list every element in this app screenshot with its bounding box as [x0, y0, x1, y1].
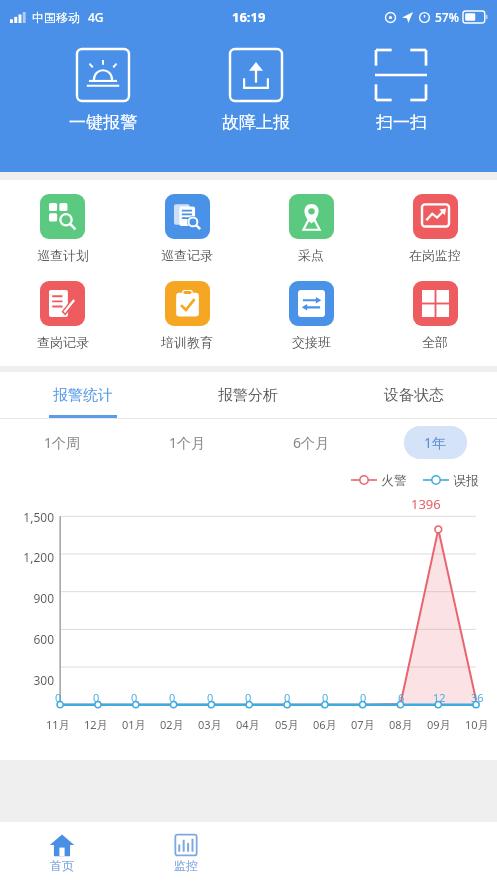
button[interactable]: 巡查计划	[0, 192, 125, 265]
staticText: 0	[169, 690, 176, 705]
staticText: 1个月	[169, 433, 206, 452]
button[interactable]: 培训教育	[125, 279, 249, 352]
staticText: 监控	[174, 858, 198, 873]
staticText: 03月	[198, 717, 222, 732]
staticText: 0	[284, 690, 291, 705]
staticText: 06月	[313, 717, 337, 732]
staticText: 16:19	[232, 8, 266, 26]
staticText: 600	[33, 631, 54, 647]
button[interactable]: 巡查记录	[125, 192, 249, 265]
staticText: 12	[433, 690, 446, 705]
button[interactable]: 交接班	[249, 279, 373, 352]
staticText: 0	[55, 690, 62, 705]
staticText: 1年	[424, 433, 447, 452]
staticText: 巡查计划	[37, 247, 89, 263]
staticText: 4G	[88, 9, 104, 25]
button[interactable]: 采点	[249, 192, 373, 265]
button[interactable]: 报警分析	[165, 372, 331, 418]
staticText: 一键报警	[69, 112, 137, 133]
staticText: 火警	[381, 472, 407, 488]
button[interactable]: 1个周	[24, 426, 101, 459]
staticText: 0	[322, 690, 329, 705]
button[interactable]: 1个月	[149, 426, 226, 459]
staticText: 0	[93, 690, 100, 705]
staticText: 全部	[422, 334, 448, 350]
staticText: 1,500	[23, 509, 54, 525]
staticText: 10月	[465, 717, 489, 732]
staticText: 6	[398, 690, 405, 705]
staticText: 04月	[236, 717, 260, 732]
button[interactable]: 1年	[404, 426, 467, 459]
staticText: 1个周	[44, 433, 81, 452]
staticText: 02月	[160, 717, 184, 732]
staticText: 报警统计	[53, 386, 113, 405]
button[interactable]: 在岗监控	[373, 192, 497, 265]
button[interactable]: 故障上报	[206, 44, 306, 137]
staticText: 6个月	[293, 433, 330, 452]
staticText: 900	[33, 590, 54, 606]
staticText: 误报	[453, 472, 479, 488]
staticText: 故障上报	[222, 112, 290, 133]
staticText: 采点	[298, 247, 324, 263]
staticText: 09月	[427, 717, 451, 732]
staticText: 1396	[411, 495, 441, 513]
button[interactable]: 设备状态	[331, 372, 497, 418]
button[interactable]: 首页	[0, 822, 124, 883]
button[interactable]: 6个月	[273, 426, 350, 459]
staticText: 08月	[389, 717, 413, 732]
button[interactable]: 全部	[373, 279, 497, 352]
staticText: 05月	[275, 717, 299, 732]
staticText: 36	[471, 690, 484, 705]
staticText: 1,200	[23, 549, 54, 565]
staticText: 扫一扫	[376, 112, 427, 133]
staticText: 57%	[435, 9, 459, 25]
staticText: 首页	[50, 858, 74, 873]
staticText: 查岗记录	[37, 334, 89, 350]
button[interactable]: 查岗记录	[0, 279, 125, 352]
button[interactable]: 一键报警	[53, 44, 153, 137]
staticText: 0	[245, 690, 252, 705]
staticText: 01月	[122, 717, 146, 732]
staticText: 07月	[351, 717, 375, 732]
staticText: 300	[33, 672, 54, 688]
staticText: 交接班	[292, 334, 331, 350]
staticText: 0	[360, 690, 367, 705]
staticText: 0	[131, 690, 138, 705]
staticText: 巡查记录	[161, 247, 213, 263]
staticText: 报警分析	[218, 386, 278, 405]
staticText: 0	[207, 690, 214, 705]
staticText: 11月	[46, 717, 70, 732]
staticText: 设备状态	[384, 386, 444, 405]
staticText: 12月	[84, 717, 108, 732]
staticText: 中国移动	[32, 10, 80, 25]
button[interactable]: 扫一扫	[358, 44, 444, 137]
button[interactable]: 报警统计	[0, 372, 165, 418]
staticText: 在岗监控	[409, 247, 461, 263]
staticText: 培训教育	[161, 334, 213, 350]
button[interactable]: 监控	[124, 822, 248, 883]
